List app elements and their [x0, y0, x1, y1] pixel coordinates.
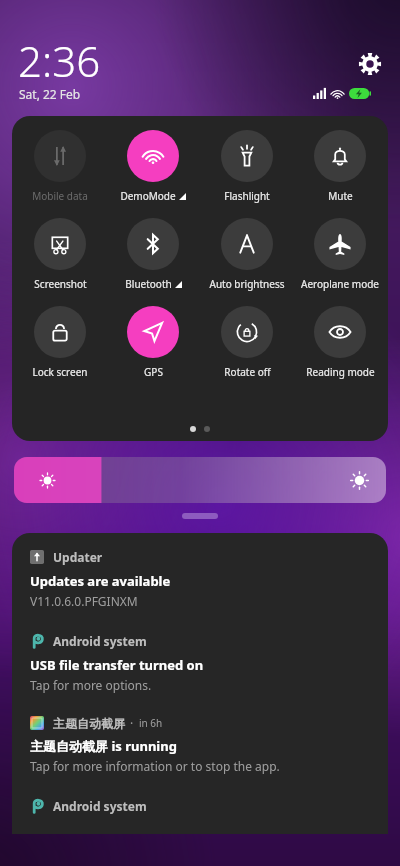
staticText: Rotate off [224, 365, 271, 379]
button[interactable]: Android system [30, 798, 372, 814]
staticText: 2:36 [18, 32, 101, 89]
button[interactable]: Rotate off [202, 304, 292, 379]
staticText: Android system [53, 633, 147, 649]
staticText: Reading mode [306, 365, 375, 379]
staticText: 主题自动截屏 [53, 716, 125, 731]
button[interactable]: Auto brightness [202, 216, 292, 291]
staticText: Sat, 22 Feb [19, 86, 81, 102]
staticText: Tap for more information or to stop the … [30, 758, 280, 774]
button[interactable]: Lock screen [15, 304, 105, 379]
staticText: in 6h [139, 716, 163, 730]
button[interactable]: Screenshot [15, 216, 105, 291]
staticText: Android system [53, 798, 147, 814]
button[interactable]: Mute [295, 128, 385, 203]
staticText: Updater [53, 549, 103, 565]
button[interactable]: Brightness [14, 457, 386, 503]
button[interactable]: Android system [30, 633, 372, 649]
button[interactable]: Updater [30, 549, 372, 565]
staticText: Auto brightness [209, 277, 285, 291]
staticText: · [130, 715, 134, 731]
button[interactable]: Mobile data [15, 128, 105, 203]
staticText: Mute [328, 189, 353, 203]
button[interactable]: Reading mode [295, 304, 385, 379]
button[interactable]: Bluetooth [108, 216, 198, 291]
staticText: V11.0.6.0.PFGINXM [30, 593, 138, 609]
staticText: Tap for more options. [30, 677, 152, 693]
button[interactable]: Flashlight [202, 128, 292, 203]
staticText: DemoMode [120, 189, 176, 203]
staticText: Bluetooth [125, 277, 172, 291]
staticText: GPS [144, 365, 163, 379]
button[interactable]: GPS [108, 304, 198, 379]
button[interactable]: DemoMode [108, 128, 198, 203]
staticText: 主题自动截屏 is running [30, 737, 177, 755]
button[interactable]: Aeroplane mode [295, 216, 385, 291]
staticText: Aeroplane mode [301, 277, 379, 291]
staticText: Mobile data [32, 189, 88, 203]
button[interactable]: Settings [358, 52, 382, 76]
staticText: Flashlight [224, 189, 270, 203]
staticText: Lock screen [32, 365, 88, 379]
staticText: Updates are available [30, 572, 171, 590]
button[interactable]: Expand [182, 513, 218, 519]
staticText: USB file transfer turned on [30, 656, 204, 674]
staticText: Screenshot [34, 277, 87, 291]
button[interactable]: 主题自动截屏 [30, 715, 372, 731]
